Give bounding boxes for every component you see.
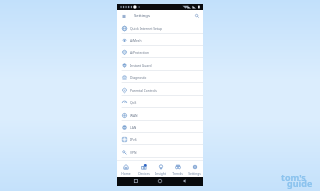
staticText: AiMesh [130,38,142,42]
button[interactable]: Home [117,160,135,177]
button[interactable]: Quick Internet Setup [117,22,203,34]
staticText: Parental Controls [130,88,157,92]
staticText: AiProtection [130,50,149,54]
button[interactable]: AiMesh [117,34,203,46]
button[interactable]: WAN [117,109,203,121]
staticText: VPN [130,150,137,154]
button[interactable]: Open navigation menu [117,10,130,22]
staticText: Trends [172,171,183,175]
button[interactable]: Devices [135,160,152,177]
staticText: Insight [155,171,166,175]
button[interactable]: Diagnostic [117,71,203,83]
staticText: Devices [138,171,150,175]
button[interactable]: Instant Guard [117,59,203,71]
staticText: QoS [130,100,137,104]
staticText: IPv6 [130,137,137,141]
staticText: Settings [188,171,201,175]
staticText: WAN [130,113,138,117]
staticText: Home [121,171,131,175]
staticText: Settings [134,13,150,19]
staticText: tom's [281,171,306,183]
staticText: Instant Guard [130,63,152,67]
staticText: Quick Internet Setup [130,26,163,30]
button[interactable]: Insight [152,160,169,177]
button[interactable]: Trends [169,160,186,177]
button[interactable]: Parental Controls [117,84,203,96]
button[interactable]: IPv6 [117,133,203,145]
button[interactable]: VPN [117,146,203,158]
staticText: guide [287,177,313,189]
button[interactable]: AiProtection [117,46,203,58]
button[interactable]: Search [191,10,203,22]
button[interactable]: Settings [186,160,203,177]
button[interactable]: QoS [117,96,203,108]
button[interactable]: LAN [117,121,203,133]
staticText: LAN [130,125,137,129]
staticText: Diagnostic [130,75,147,79]
